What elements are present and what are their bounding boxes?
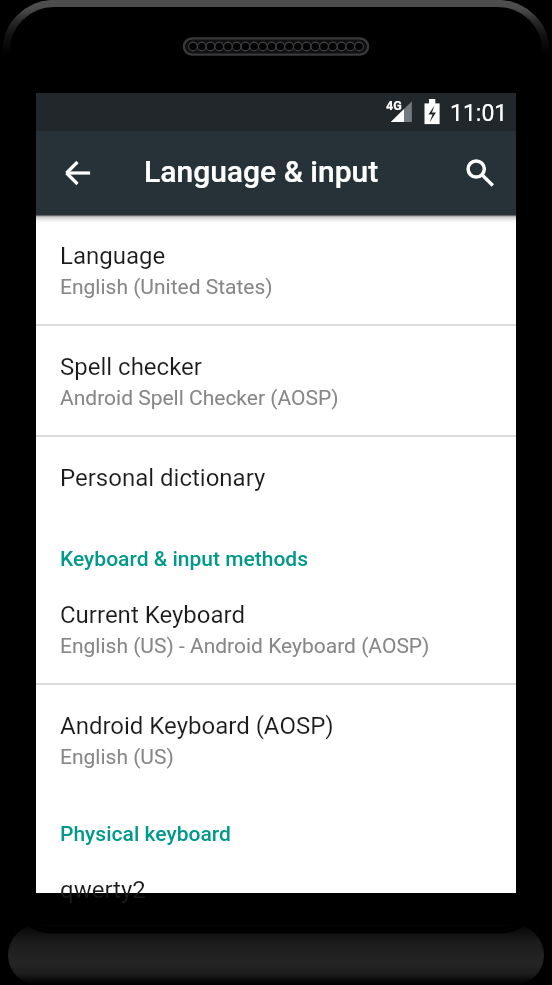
button[interactable]: qwerty2 bbox=[36, 849, 516, 931]
staticText: Personal dictionary bbox=[60, 464, 266, 492]
staticText: Physical keyboard bbox=[60, 822, 231, 847]
staticText: English (United States) bbox=[60, 275, 273, 300]
staticText: qwerty2 bbox=[60, 876, 146, 904]
staticText: Current Keyboard bbox=[60, 601, 246, 629]
staticText: Language bbox=[60, 242, 166, 270]
button[interactable]: Navigate up bbox=[42, 131, 114, 215]
staticText: Language & input bbox=[144, 154, 379, 189]
button[interactable]: Search bbox=[444, 131, 516, 215]
staticText: 11:01 bbox=[450, 100, 508, 127]
button[interactable]: Personal dictionary bbox=[36, 437, 516, 519]
staticText: English (US) bbox=[60, 745, 174, 770]
staticText: Spell checker bbox=[60, 353, 202, 381]
staticText: English (US) - Android Keyboard (AOSP) bbox=[60, 634, 430, 659]
button[interactable]: Spell checker bbox=[36, 326, 516, 435]
staticText: 4G bbox=[386, 98, 402, 113]
staticText: Android Keyboard (AOSP) bbox=[60, 712, 334, 740]
button[interactable]: Language bbox=[36, 215, 516, 324]
staticText: Keyboard & input methods bbox=[60, 547, 309, 572]
button[interactable]: Current Keyboard bbox=[36, 574, 516, 683]
button[interactable]: Android Keyboard (AOSP) bbox=[36, 685, 516, 794]
staticText: Android Spell Checker (AOSP) bbox=[60, 386, 339, 411]
